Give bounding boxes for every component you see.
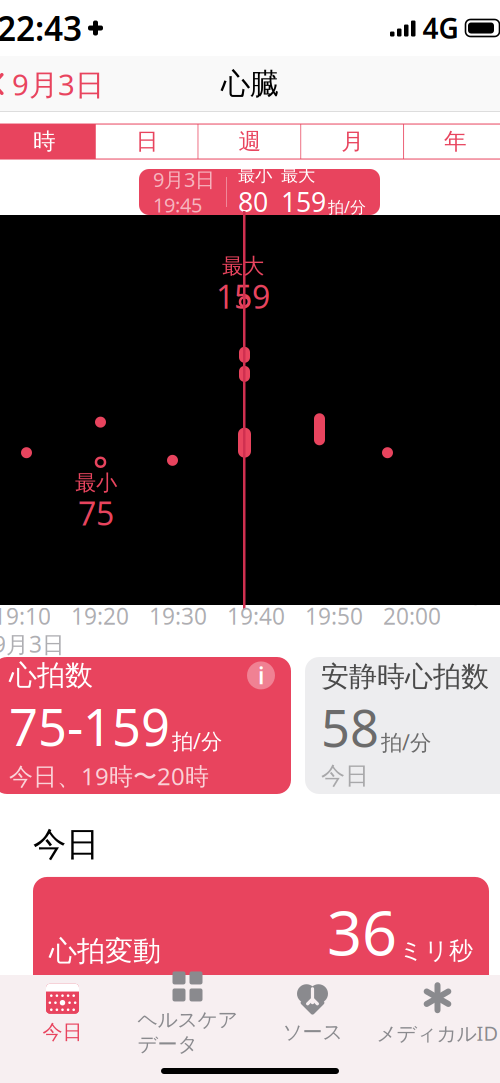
staticText: i [258,660,264,690]
staticText: 心拍数 [9,658,93,693]
staticText: 159 [281,184,326,219]
staticText: 4G [422,9,458,47]
staticText: 今日 [33,824,99,865]
button[interactable]: 今日 [0,983,125,1045]
staticText: 時 [33,128,56,155]
staticText: 80 [238,184,268,219]
staticText: 9月3日 [0,629,65,659]
button[interactable]: 時 [0,124,96,159]
staticText: 19:20 [71,601,129,631]
staticText: 36 [327,891,397,972]
staticText: 日 [136,128,159,155]
staticText: 22:43 [0,6,82,50]
staticText: 19:50 [305,601,363,631]
staticText: 最大 [222,253,264,279]
staticText: メディカルID [376,1020,498,1046]
staticText: 75 [78,492,114,534]
staticText: 最大 [281,165,315,186]
staticText: 週 [238,128,261,155]
staticText: 今日、19時〜20時 [9,760,209,792]
staticText: 月 [341,128,364,155]
staticText: 75-159 [9,693,170,760]
button[interactable]: 日 [96,124,199,159]
staticText: 58 [321,694,379,761]
staticText: 安静時心拍数 [321,659,489,694]
staticText: 19:10 [0,601,51,631]
button[interactable]: 月 [301,124,404,159]
staticText: 拍/分 [328,196,366,217]
staticText: 今日 [321,761,369,791]
staticText: 今日 [42,1020,82,1044]
button[interactable]: 心拍変動 [33,877,489,997]
staticText: 拍/分 [381,728,431,756]
button[interactable]: 9月3日 [0,56,120,111]
staticText: 拍/分 [172,727,222,755]
staticText: 9月3日 [12,64,104,103]
staticText: 20:00 [383,601,441,631]
staticText: 19:45 [153,191,202,218]
staticText: ヘルスケアデータ [137,1007,237,1056]
staticText: 年 [444,128,467,155]
staticText: 19:40 [227,601,285,631]
button[interactable]: ソース [250,983,375,1045]
staticText: 最小 [75,470,117,496]
staticText: ソース [282,1020,342,1044]
staticText: 19:30 [149,601,207,631]
staticText: 今日 22:13 [363,972,473,1002]
button[interactable]: 安静時心拍数 [305,657,500,794]
button[interactable]: 年 [404,124,500,159]
staticText: 心臓 [221,66,279,102]
staticText: 200 [469,208,500,238]
staticText: 心拍変動 [49,934,161,968]
button[interactable]: 心拍数 [0,657,291,794]
staticText: 159 [216,275,270,318]
staticText: ミリ秒 [399,936,473,965]
button[interactable]: 週 [199,124,301,159]
staticText: 9月3日 [153,166,215,192]
staticText: 最小 [238,165,272,186]
button[interactable]: ヘルスケアデータ [125,983,250,1045]
button[interactable]: メディカルID [375,983,500,1045]
staticText: 0 [469,581,482,611]
